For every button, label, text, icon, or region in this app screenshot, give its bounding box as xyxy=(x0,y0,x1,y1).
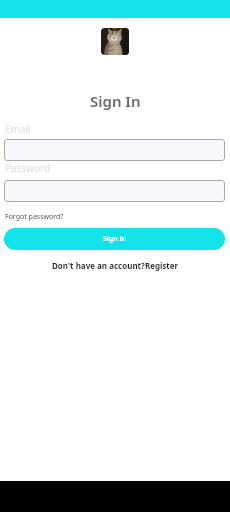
other: App logo xyxy=(101,28,129,55)
staticText: Password xyxy=(5,161,51,175)
button[interactable]: Don't have an account?Register xyxy=(52,260,179,271)
staticText: Don't have an account?Register xyxy=(52,260,179,271)
staticText: Sign In xyxy=(103,234,127,244)
button[interactable] xyxy=(4,139,225,161)
button[interactable]: Sign In xyxy=(4,228,225,250)
button[interactable] xyxy=(4,180,225,202)
button[interactable]: Forgot password? xyxy=(5,212,64,222)
staticText: Sign In xyxy=(90,91,141,111)
staticText: Email xyxy=(5,122,31,136)
